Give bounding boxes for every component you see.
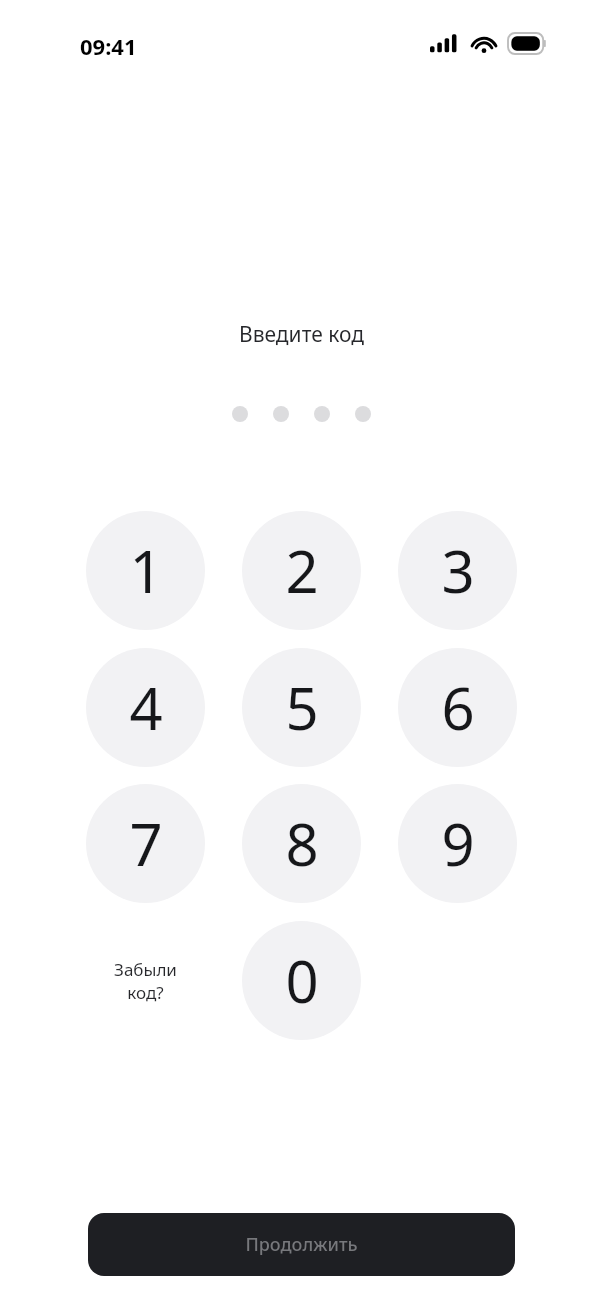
staticText: 4 (129, 668, 163, 747)
button[interactable]: 7 (86, 784, 205, 903)
staticText: 6 (441, 668, 475, 747)
button[interactable]: 8 (242, 784, 361, 903)
staticText: 7 (129, 804, 163, 883)
staticText: 8 (285, 804, 319, 883)
staticText: 0 (285, 941, 319, 1020)
other: Wi-Fi (470, 33, 498, 55)
button[interactable]: Забыли код? (86, 921, 205, 1040)
button[interactable]: 6 (398, 648, 517, 767)
button[interactable]: 2 (242, 511, 361, 630)
staticText: 1 (129, 531, 163, 610)
button[interactable]: 1 (86, 511, 205, 630)
staticText: Введите код (239, 320, 364, 349)
staticText: 5 (285, 668, 319, 747)
staticText: 9 (441, 804, 475, 883)
staticText: 09:41 (80, 31, 137, 61)
other: Battery (508, 33, 548, 54)
staticText: 2 (285, 531, 319, 610)
staticText: Забыли код? (114, 958, 177, 1004)
other: Cellular signal (430, 33, 458, 55)
button[interactable]: 9 (398, 784, 517, 903)
staticText: 3 (441, 531, 475, 610)
staticText: Продолжить (245, 1232, 358, 1257)
button[interactable]: 4 (86, 648, 205, 767)
button[interactable]: 0 (242, 921, 361, 1040)
button[interactable]: Продолжить (88, 1213, 515, 1276)
button[interactable]: 5 (242, 648, 361, 767)
button[interactable]: 3 (398, 511, 517, 630)
